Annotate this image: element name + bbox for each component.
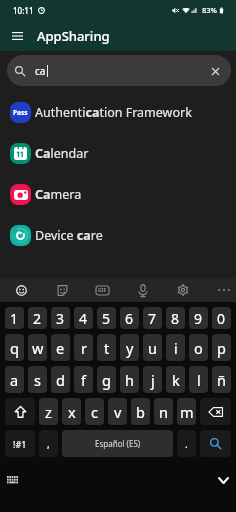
button[interactable]: f — [74, 366, 93, 393]
button[interactable]: 9 — [189, 307, 208, 329]
staticText: Calendar — [35, 145, 89, 162]
button[interactable]: a — [5, 366, 24, 393]
button[interactable]: t — [97, 334, 116, 361]
button[interactable]: 2 — [28, 307, 47, 329]
button[interactable]: 3 — [51, 307, 70, 329]
button[interactable]: Search — [200, 430, 231, 457]
button[interactable]: 7 — [143, 307, 162, 329]
button[interactable]: c — [85, 398, 104, 425]
staticText: 7 — [148, 309, 157, 328]
staticText: y — [126, 338, 134, 358]
staticText: ca — [35, 64, 46, 78]
staticText: n — [159, 402, 168, 422]
button[interactable]: More options — [212, 278, 236, 302]
button[interactable]: s — [28, 366, 47, 393]
button[interactable]: 0 — [212, 307, 231, 329]
staticText: GIF — [98, 287, 107, 294]
staticText: 5 — [102, 309, 111, 328]
staticText: Pass — [13, 108, 28, 117]
button[interactable]: h — [120, 366, 139, 393]
button[interactable]: n — [154, 398, 173, 425]
button[interactable]: 6 — [120, 307, 139, 329]
staticText: w — [32, 338, 44, 358]
staticText: q — [10, 338, 19, 358]
button[interactable]: ca — [7, 55, 231, 86]
staticText: , — [47, 437, 50, 451]
button[interactable]: 1 — [5, 307, 24, 329]
button[interactable]: Pass — [0, 92, 236, 133]
button[interactable]: q — [5, 334, 24, 361]
staticText: x — [68, 402, 76, 422]
button[interactable]: 5 — [97, 307, 116, 329]
staticText: z — [45, 402, 52, 422]
button[interactable]: k — [166, 366, 185, 393]
button[interactable]: w — [28, 334, 47, 361]
button[interactable]: Voice input — [131, 278, 155, 302]
button[interactable]: y — [120, 334, 139, 361]
button[interactable]: Emoji — [9, 278, 33, 302]
button[interactable]: p — [212, 334, 231, 361]
staticText: f — [81, 370, 86, 390]
staticText: . — [185, 437, 188, 451]
button[interactable]: v — [108, 398, 127, 425]
button[interactable]: Calendar — [0, 133, 236, 174]
staticText: a — [10, 370, 19, 390]
staticText: r — [81, 338, 87, 358]
staticText: 83% — [202, 5, 217, 15]
staticText: i — [174, 338, 178, 358]
staticText: ñ — [217, 370, 226, 390]
button[interactable]: i — [166, 334, 185, 361]
button[interactable]: . — [177, 430, 196, 457]
staticText: !#1 — [13, 438, 27, 450]
button[interactable]: Open navigation menu — [4, 22, 31, 49]
staticText: 10:11 — [13, 5, 34, 16]
staticText: 9 — [194, 309, 203, 328]
staticText: t — [104, 338, 110, 358]
button[interactable]: Español (ES) — [62, 430, 173, 457]
button[interactable]: 4 — [74, 307, 93, 329]
staticText: c — [91, 402, 98, 422]
staticText: v — [114, 402, 122, 422]
button[interactable]: u — [143, 334, 162, 361]
button[interactable]: l — [189, 366, 208, 393]
staticText: u — [148, 338, 157, 358]
button[interactable]: g — [97, 366, 116, 393]
button[interactable]: Backspace — [200, 398, 231, 425]
button[interactable]: x — [62, 398, 81, 425]
button[interactable]: o — [189, 334, 208, 361]
button[interactable]: , — [39, 430, 58, 457]
button[interactable]: j — [143, 366, 162, 393]
button[interactable]: d — [51, 366, 70, 393]
button[interactable]: ñ — [212, 366, 231, 393]
button[interactable]: Clear search — [203, 59, 227, 83]
staticText: Authentication Framework — [35, 104, 192, 121]
staticText: 0 — [217, 309, 226, 328]
staticText: 2 — [33, 309, 42, 328]
staticText: l — [197, 370, 201, 390]
button[interactable]: 8 — [166, 307, 185, 329]
staticText: 6 — [125, 309, 134, 328]
staticText: 3 — [56, 309, 65, 328]
staticText: Camera — [35, 186, 82, 203]
button[interactable]: z — [39, 398, 58, 425]
button[interactable]: Shift — [5, 398, 35, 425]
button[interactable]: Device care — [0, 215, 236, 256]
button[interactable]: Keyboard settings — [171, 278, 195, 302]
staticText: s — [34, 370, 41, 390]
staticText: b — [136, 402, 145, 422]
staticText: k — [172, 370, 180, 390]
button[interactable]: GIF — [90, 278, 114, 302]
staticText: Device care — [35, 227, 103, 244]
button[interactable]: Stickers — [50, 278, 74, 302]
button[interactable]: !#1 — [5, 430, 35, 457]
button[interactable]: Camera — [0, 174, 236, 215]
button[interactable]: r — [74, 334, 93, 361]
button[interactable]: b — [131, 398, 150, 425]
staticText: 1 — [10, 309, 19, 328]
button[interactable]: Switch keyboard — [4, 471, 21, 488]
staticText: AppSharing — [37, 27, 110, 45]
staticText: e — [56, 338, 65, 358]
button[interactable]: Hide keyboard — [210, 467, 236, 493]
button[interactable]: e — [51, 334, 70, 361]
button[interactable]: m — [177, 398, 196, 425]
